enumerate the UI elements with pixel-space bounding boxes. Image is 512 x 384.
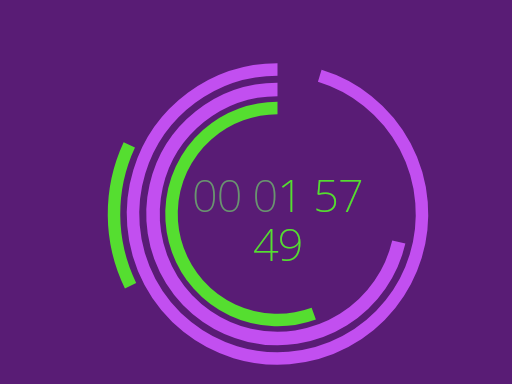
staticText: 00 01 57 xyxy=(192,164,363,225)
staticText: 49 xyxy=(253,213,303,274)
